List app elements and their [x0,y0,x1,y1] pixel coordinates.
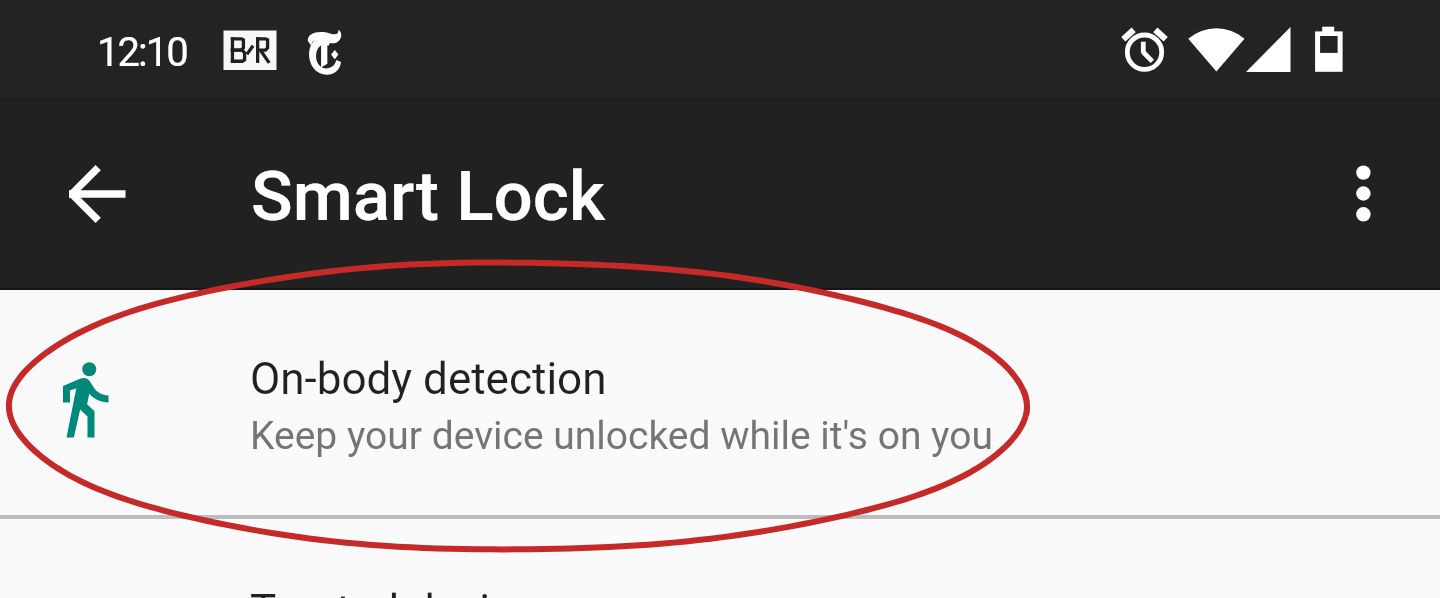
staticText: Smart Lock [251,156,606,237]
staticText: Keep your device unlocked while it's on … [250,413,993,459]
button[interactable]: More options [1320,150,1406,236]
button[interactable]: On-body detection [0,290,1440,515]
button[interactable]: Navigate up [53,151,139,237]
staticText: On-body detection [250,353,607,405]
staticText: 12:10 [97,29,187,76]
button[interactable]: Trusted devices [0,522,1440,598]
staticText: Trusted devices [250,585,559,598]
